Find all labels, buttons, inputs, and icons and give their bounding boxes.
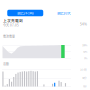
staticText: 過去24小時 [17, 10, 33, 15]
staticText: 30分 [82, 76, 87, 80]
button[interactable]: 過去24小時 [7, 10, 43, 16]
button[interactable]: 過去10天 [45, 10, 83, 16]
staticText: 50% [83, 50, 87, 53]
staticText: 1小時 [80, 68, 87, 71]
staticText: 活動 [3, 62, 9, 66]
staticText: 電池電量 [3, 34, 15, 39]
staticText: 上次充電到 [3, 18, 23, 23]
staticText: 0分 [83, 84, 87, 88]
staticText: 100% [82, 43, 87, 47]
staticText: 今天 07:05 [3, 23, 19, 27]
staticText: 0% [84, 56, 87, 60]
staticText: 54% [80, 22, 87, 26]
staticText: 過去10天 [57, 10, 70, 15]
